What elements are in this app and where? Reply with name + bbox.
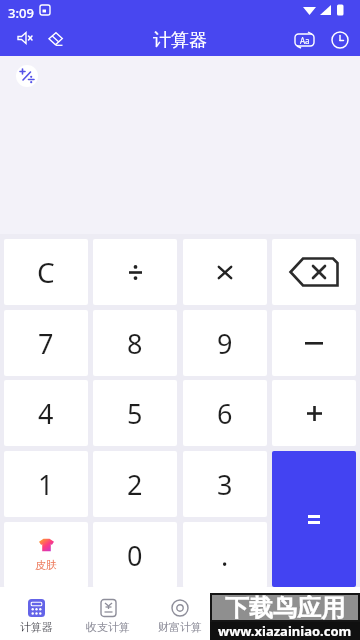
button[interactable]: Aa: [291, 26, 319, 54]
button[interactable]: [272, 239, 356, 305]
staticText: 4: [38, 395, 54, 432]
button[interactable]: [272, 310, 356, 376]
staticText: 计算器: [20, 620, 53, 634]
button[interactable]: 1: [4, 451, 88, 517]
button[interactable]: 5: [93, 380, 177, 446]
button[interactable]: [16, 65, 38, 87]
staticText: 8: [127, 325, 143, 362]
staticText: 财富计算: [158, 620, 202, 634]
staticText: 收支计算: [86, 620, 130, 634]
staticText: 下载鸟应用: [225, 593, 345, 622]
staticText: 计算器: [153, 29, 207, 52]
button[interactable]: 4: [4, 380, 88, 446]
button[interactable]: [272, 380, 356, 446]
button[interactable]: [42, 26, 68, 52]
button[interactable]: [12, 26, 38, 52]
staticText: 9: [217, 325, 233, 362]
staticText: 3: [217, 466, 233, 503]
button[interactable]: 计算器: [8, 593, 64, 639]
button[interactable]: 7: [4, 310, 88, 376]
staticText: 7: [38, 325, 54, 362]
button[interactable]: 收支计算: [80, 593, 136, 639]
button[interactable]: 皮肤: [4, 522, 88, 588]
button[interactable]: 3: [183, 451, 267, 517]
button[interactable]: 6: [183, 380, 267, 446]
button[interactable]: [183, 239, 267, 305]
button[interactable]: 2: [93, 451, 177, 517]
staticText: 6: [217, 395, 233, 432]
button[interactable]: 0: [93, 522, 177, 588]
button[interactable]: .: [183, 522, 267, 588]
button[interactable]: [326, 26, 354, 54]
button[interactable]: C: [4, 239, 88, 305]
button[interactable]: [272, 451, 356, 587]
staticText: www.xiazainiao.com: [218, 622, 352, 640]
button[interactable]: 8: [93, 310, 177, 376]
staticText: 5: [127, 395, 143, 432]
staticText: 0: [127, 537, 143, 574]
staticText: .: [221, 537, 229, 574]
staticText: 1: [38, 466, 54, 503]
button[interactable]: 财富计算: [152, 593, 208, 639]
button[interactable]: [93, 239, 177, 305]
staticText: 3:09: [8, 4, 34, 22]
staticText: C: [37, 253, 55, 291]
staticText: 2: [127, 466, 143, 503]
staticText: 皮肤: [35, 558, 57, 572]
staticText: Aa: [300, 35, 310, 46]
button[interactable]: 9: [183, 310, 267, 376]
